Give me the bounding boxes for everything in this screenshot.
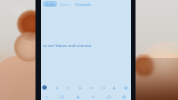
button[interactable]: Chats tab bbox=[43, 1, 57, 7]
button[interactable]: Action bbox=[101, 86, 105, 90]
button[interactable]: to see Status and connect bbox=[43, 43, 92, 48]
staticText: Chats bbox=[45, 2, 55, 7]
button[interactable]: Action bbox=[66, 86, 70, 90]
button[interactable]: Action bbox=[76, 95, 80, 99]
button[interactable]: Action bbox=[89, 86, 93, 90]
button[interactable]: Action bbox=[124, 86, 128, 90]
button[interactable]: Action bbox=[60, 95, 64, 99]
button[interactable]: Action bbox=[91, 95, 95, 99]
button[interactable]: Action bbox=[42, 85, 47, 90]
staticText: Status bbox=[60, 2, 71, 7]
button[interactable]: Action bbox=[45, 95, 49, 99]
button[interactable]: Action bbox=[107, 95, 111, 99]
button[interactable]: Action bbox=[122, 95, 126, 99]
staticText: to see Status and connect bbox=[43, 43, 92, 48]
button[interactable]: Channels tab bbox=[74, 2, 92, 7]
button[interactable]: Status tab bbox=[59, 2, 72, 7]
staticText: Channels bbox=[75, 2, 91, 7]
button[interactable]: Action bbox=[112, 86, 116, 90]
button[interactable]: Action bbox=[55, 86, 59, 90]
button[interactable]: Action bbox=[78, 86, 82, 90]
